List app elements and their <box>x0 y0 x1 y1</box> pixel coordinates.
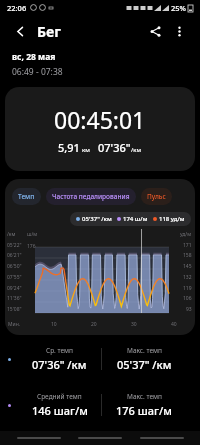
staticText: Темп <box>18 192 35 201</box>
staticText: 15'08" <box>7 306 22 313</box>
button[interactable]: Средний темп <box>0 389 200 421</box>
staticText: Бег <box>37 22 61 41</box>
staticText: 11'36" <box>7 295 22 302</box>
staticText: 07'36" <box>98 140 131 155</box>
staticText: 118 уд/м <box>159 215 185 223</box>
staticText: 07'55" <box>7 274 22 281</box>
button[interactable]: Navigation button <box>139 432 185 444</box>
button[interactable]: Ср. темп <box>0 343 200 375</box>
staticText: /км <box>131 146 142 154</box>
staticText: 09'24" <box>7 285 22 292</box>
button[interactable]: Share <box>144 20 166 42</box>
staticText: 40 <box>171 321 177 328</box>
staticText: 158 <box>183 252 192 259</box>
staticText: 06'50" <box>7 263 22 270</box>
staticText: 106 <box>183 295 192 302</box>
staticText: 05'22" <box>7 242 22 249</box>
staticText: Мин. <box>8 321 21 328</box>
staticText: 22:06 <box>7 3 27 13</box>
button[interactable]: Пульс <box>141 188 172 205</box>
staticText: 10 <box>51 321 57 328</box>
staticText: 06:49 - 07:38 <box>12 66 63 78</box>
button[interactable]: 00:45:01 <box>5 87 195 171</box>
staticText: 05'37" /км <box>117 357 172 372</box>
staticText: 93 <box>186 306 192 313</box>
staticText: 05'37" /км <box>82 215 112 223</box>
staticText: ш/м <box>27 231 38 238</box>
button[interactable]: Темп <box>12 188 41 205</box>
button[interactable]: Navigation button <box>16 432 62 444</box>
staticText: 171 <box>183 242 192 249</box>
staticText: 174 ш/м <box>123 215 148 223</box>
staticText: Макс. темп <box>127 346 162 355</box>
staticText: 145 <box>183 263 192 270</box>
staticText: Пульс <box>147 192 166 201</box>
staticText: Частота педалирования <box>52 192 130 201</box>
staticText: 30 <box>131 321 137 328</box>
staticText: 07'36" /км <box>32 357 87 372</box>
staticText: Средний темп <box>37 392 82 401</box>
staticText: 132 <box>183 274 192 281</box>
staticText: вс, 28 мая <box>12 51 56 63</box>
staticText: 06'21" <box>7 252 22 259</box>
staticText: 25% <box>171 3 186 13</box>
button[interactable]: Navigation button <box>77 432 123 444</box>
staticText: 146 шаг/м <box>32 403 88 418</box>
staticText: 20 <box>91 321 97 328</box>
button[interactable]: Back <box>10 21 30 41</box>
staticText: 176 шаг/м <box>116 403 172 418</box>
staticText: Макс. темп <box>127 392 162 401</box>
staticText: Ср. темп <box>46 346 74 355</box>
staticText: 00:45:01 <box>54 104 146 135</box>
staticText: 119 <box>183 285 192 292</box>
button[interactable]: Частота педалирования <box>46 188 136 205</box>
staticText: уд/м <box>180 231 192 238</box>
button[interactable]: More options <box>168 20 190 42</box>
staticText: /км <box>7 231 16 238</box>
staticText: 5,91 <box>58 140 80 155</box>
staticText: км <box>82 146 90 154</box>
staticText: 176 <box>27 243 36 250</box>
